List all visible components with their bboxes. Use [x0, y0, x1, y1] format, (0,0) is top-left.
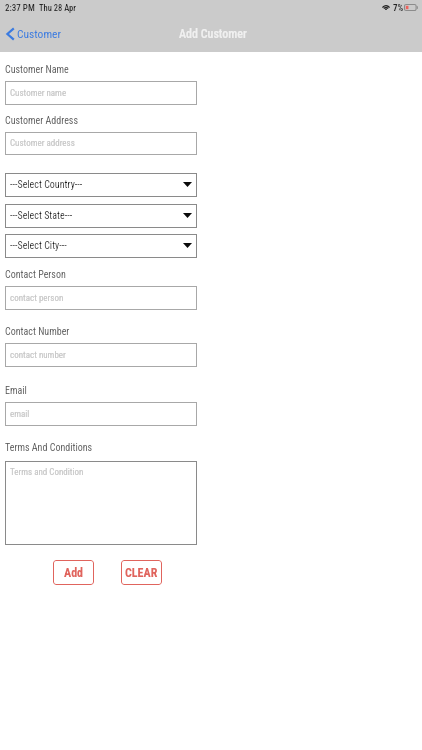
- button[interactable]: Customer name: [5, 81, 197, 105]
- staticText: Terms And Conditions: [5, 442, 93, 454]
- staticText: Customer Address: [5, 115, 78, 127]
- staticText: Add: [64, 566, 84, 580]
- staticText: Add Customer: [179, 27, 247, 41]
- staticText: Terms and Condition: [10, 467, 84, 478]
- button[interactable]: contact person: [5, 286, 197, 310]
- other: Battery: [404, 4, 418, 11]
- staticText: CLEAR: [125, 566, 158, 580]
- staticText: email: [10, 409, 30, 420]
- button[interactable]: email: [5, 402, 197, 426]
- button[interactable]: CLEAR: [121, 560, 162, 585]
- button[interactable]: contact number: [5, 343, 197, 367]
- staticText: Customer: [17, 27, 61, 40]
- button[interactable]: ---Select Country---: [5, 173, 197, 197]
- button[interactable]: Terms and Condition: [5, 461, 197, 545]
- button[interactable]: ---Select City---: [5, 234, 197, 258]
- staticText: Thu 28 Apr: [39, 3, 77, 13]
- staticText: contact number: [10, 350, 66, 361]
- staticText: 2:37 PM: [5, 3, 35, 14]
- button[interactable]: Customer: [6, 27, 61, 41]
- staticText: Email: [5, 385, 27, 397]
- staticText: Customer address: [10, 138, 75, 149]
- staticText: Contact Person: [5, 269, 66, 281]
- staticText: ---Select City---: [10, 240, 67, 252]
- button[interactable]: Customer address: [5, 132, 197, 155]
- staticText: contact person: [10, 293, 64, 304]
- button[interactable]: Add: [53, 560, 94, 585]
- staticText: Contact Number: [5, 326, 70, 338]
- staticText: Customer name: [10, 88, 67, 99]
- staticText: Customer Name: [5, 64, 69, 76]
- staticText: 7%: [393, 3, 404, 14]
- button[interactable]: ---Select State---: [5, 204, 197, 228]
- other: WiFi: [382, 3, 390, 10]
- staticText: ---Select State---: [10, 210, 73, 222]
- staticText: ---Select Country---: [10, 179, 83, 191]
